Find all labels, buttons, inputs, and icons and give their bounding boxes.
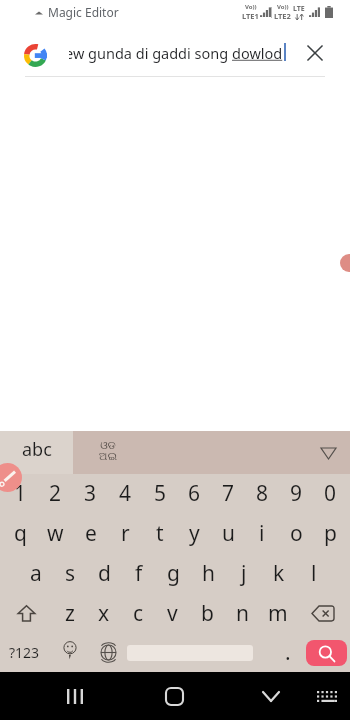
staticText: f bbox=[135, 559, 143, 588]
staticText: s bbox=[65, 559, 76, 588]
staticText: abc bbox=[22, 437, 52, 462]
button[interactable]: k bbox=[261, 553, 296, 593]
staticText: dowlod bbox=[232, 43, 283, 63]
staticText: 7 bbox=[222, 479, 235, 508]
button[interactable]: v bbox=[155, 593, 190, 633]
staticText: ଓଡ ଅଇ bbox=[99, 440, 117, 462]
button[interactable]: Emoji bbox=[49, 633, 91, 672]
staticText: l bbox=[311, 559, 317, 588]
button[interactable]: o bbox=[279, 513, 313, 553]
button[interactable]: 1 bbox=[3, 474, 38, 513]
staticText: n bbox=[236, 599, 249, 628]
staticText: a bbox=[30, 559, 42, 588]
button[interactable]: Floating shortcut bbox=[340, 254, 350, 272]
staticText: 4 bbox=[119, 479, 132, 508]
button[interactable]: Home bbox=[150, 680, 198, 712]
button[interactable]: x bbox=[87, 593, 121, 633]
staticText: Magic Editor bbox=[48, 4, 119, 20]
button[interactable]: 6 bbox=[177, 474, 211, 513]
staticText: y bbox=[189, 519, 200, 548]
button[interactable]: i bbox=[245, 513, 279, 553]
button[interactable]: z bbox=[53, 593, 87, 633]
button[interactable]: 9 bbox=[279, 474, 313, 513]
button[interactable]: Switch keyboard bbox=[305, 680, 349, 712]
staticText: r bbox=[121, 519, 130, 548]
staticText: LTE bbox=[293, 4, 305, 14]
staticText: c bbox=[133, 599, 144, 628]
staticText: 3 bbox=[84, 479, 97, 508]
staticText: d bbox=[98, 559, 111, 588]
button[interactable]: b bbox=[190, 593, 225, 633]
button[interactable]: Close keyboard bbox=[247, 680, 295, 712]
button[interactable]: u bbox=[211, 513, 245, 553]
staticText: g bbox=[167, 559, 180, 588]
staticText: t bbox=[156, 519, 164, 548]
staticText: p bbox=[324, 519, 337, 548]
button[interactable]: 0 bbox=[313, 474, 347, 513]
staticText: 9 bbox=[290, 479, 303, 508]
button[interactable]: s bbox=[53, 553, 87, 593]
button[interactable]: e bbox=[73, 513, 108, 553]
staticText: 5 bbox=[154, 479, 167, 508]
staticText: e bbox=[85, 519, 97, 548]
staticText: 1 bbox=[14, 479, 27, 508]
staticText: LTE2 bbox=[274, 11, 291, 21]
button[interactable]: 5 bbox=[143, 474, 177, 513]
button[interactable]: . bbox=[274, 633, 302, 672]
button[interactable]: t bbox=[143, 513, 177, 553]
staticText: . bbox=[285, 638, 291, 667]
button[interactable]: Shift bbox=[0, 593, 53, 633]
button[interactable]: m bbox=[260, 593, 295, 633]
staticText: ew gunda di gaddi song bbox=[69, 43, 232, 63]
button[interactable]: Recent apps bbox=[51, 680, 99, 712]
button[interactable]: f bbox=[121, 553, 156, 593]
button[interactable]: Clear bbox=[296, 34, 334, 72]
button[interactable]: y bbox=[177, 513, 211, 553]
staticText: 0 bbox=[324, 479, 337, 508]
staticText: j bbox=[241, 559, 247, 588]
button[interactable]: ?123 bbox=[0, 633, 49, 672]
staticText: q bbox=[14, 519, 27, 548]
button[interactable]: h bbox=[191, 553, 226, 593]
staticText: h bbox=[202, 559, 215, 588]
button[interactable]: j bbox=[226, 553, 261, 593]
staticText: b bbox=[201, 599, 214, 628]
button[interactable]: abc bbox=[0, 431, 73, 474]
staticText: m bbox=[268, 599, 288, 628]
button[interactable]: c bbox=[121, 593, 155, 633]
button[interactable]: 7 bbox=[211, 474, 245, 513]
button[interactable]: Backspace bbox=[295, 593, 350, 633]
staticText: v bbox=[167, 599, 178, 628]
button[interactable]: w bbox=[38, 513, 73, 553]
button[interactable]: 8 bbox=[245, 474, 279, 513]
button[interactable]: l bbox=[296, 553, 331, 593]
button[interactable]: Collapse keyboard bbox=[318, 443, 338, 463]
staticText: o bbox=[290, 519, 303, 548]
staticText: x bbox=[98, 599, 110, 628]
button[interactable]: Change language bbox=[91, 633, 126, 672]
button[interactable]: q bbox=[3, 513, 38, 553]
button[interactable]: r bbox=[108, 513, 143, 553]
button[interactable]: Kannada bbox=[73, 431, 143, 474]
button[interactable]: d bbox=[87, 553, 121, 593]
button[interactable]: a bbox=[19, 553, 53, 593]
staticText: ?123 bbox=[9, 643, 40, 662]
staticText: w bbox=[47, 519, 64, 548]
button[interactable]: 2 bbox=[38, 474, 73, 513]
button[interactable]: 3 bbox=[73, 474, 108, 513]
button[interactable]: 4 bbox=[108, 474, 143, 513]
staticText: 6 bbox=[188, 479, 201, 508]
button[interactable]: Handwriting bbox=[0, 463, 22, 492]
button[interactable]: g bbox=[156, 553, 191, 593]
button[interactable]: n bbox=[225, 593, 260, 633]
button[interactable]: p bbox=[313, 513, 347, 553]
staticText: u bbox=[222, 519, 235, 548]
button[interactable]: Search bbox=[306, 640, 347, 666]
staticText: i bbox=[259, 519, 265, 548]
staticText: Vo)) bbox=[245, 3, 257, 11]
staticText: 2 bbox=[49, 479, 62, 508]
staticText: 8 bbox=[256, 479, 269, 508]
staticText: LTE1 bbox=[242, 11, 259, 21]
staticText: k bbox=[273, 559, 285, 588]
